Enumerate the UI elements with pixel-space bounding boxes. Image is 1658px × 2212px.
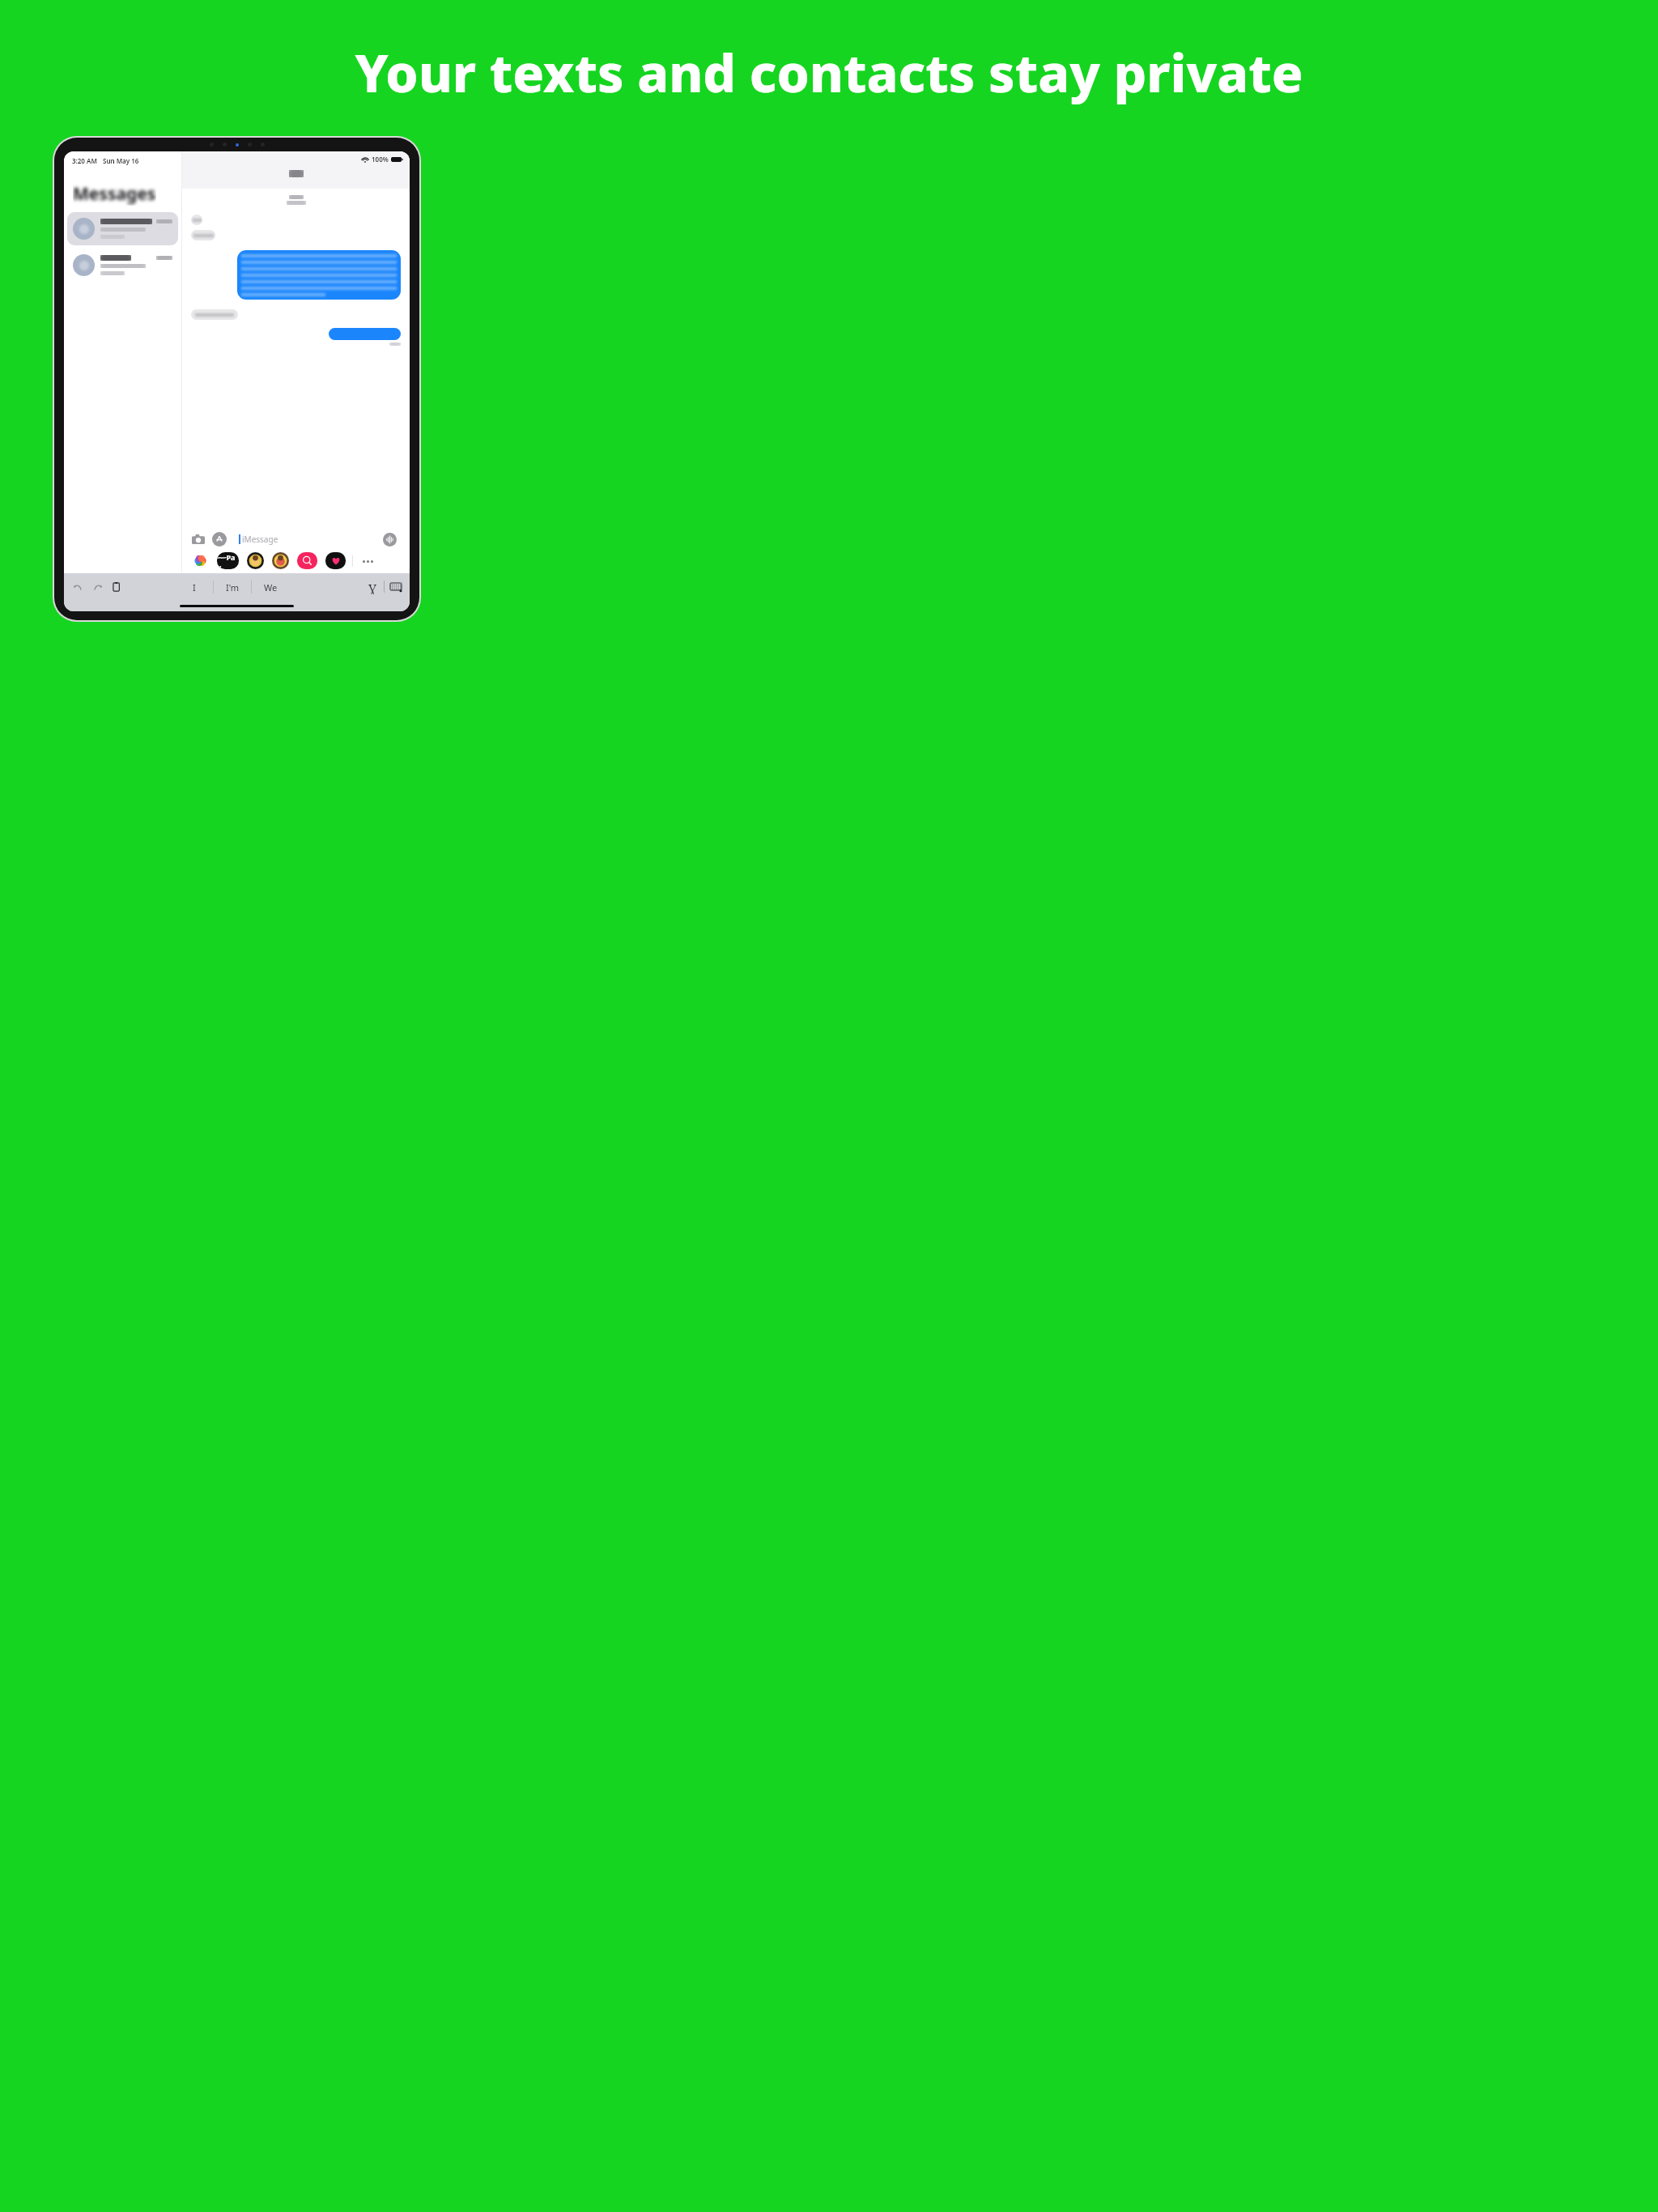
button[interactable]: Images search: [297, 552, 317, 569]
button[interactable]: [191, 230, 215, 240]
button[interactable]: More apps: [359, 553, 376, 569]
button[interactable]: Memoji sticker: [247, 552, 264, 569]
button[interactable]: Memoji sticker: [272, 552, 289, 569]
button[interactable]: [191, 309, 238, 320]
button[interactable]: iMessage: [233, 530, 402, 549]
button[interactable]: Digital Touch: [325, 552, 346, 569]
button[interactable]: [329, 328, 401, 340]
button[interactable]: I'm: [214, 576, 251, 598]
button[interactable]: Photos: [192, 552, 209, 569]
button[interactable]: Redo: [90, 580, 104, 594]
button[interactable]: [237, 250, 401, 300]
button[interactable]: [67, 212, 178, 245]
staticText: Messages: [73, 182, 156, 206]
button[interactable]: Undo: [70, 580, 85, 594]
button[interactable]: [67, 249, 178, 282]
staticText: Pay: [217, 552, 239, 569]
button[interactable]: I: [176, 576, 213, 598]
button[interactable]: Apple Pay: [217, 552, 239, 569]
staticText: 3:20 AM: [72, 156, 97, 165]
other: Record audio: [383, 533, 397, 547]
staticText: Your texts and contacts stay private: [355, 37, 1303, 108]
staticText: Sun May 16: [103, 156, 139, 165]
button[interactable]: Handwriting: [365, 580, 380, 594]
button[interactable]: Hide keyboard: [389, 580, 403, 594]
staticText: I: [193, 581, 196, 593]
button[interactable]: Camera: [189, 530, 207, 548]
staticText: Ɣ: [368, 580, 377, 594]
button[interactable]: [191, 215, 202, 225]
button[interactable]: App Store: [212, 532, 227, 547]
button[interactable]: We: [252, 576, 289, 598]
staticText: 100%: [372, 155, 389, 164]
staticText: We: [264, 581, 278, 593]
staticText: iMessage: [242, 534, 278, 545]
button[interactable]: Paste: [109, 580, 124, 594]
staticText: I'm: [226, 581, 240, 593]
